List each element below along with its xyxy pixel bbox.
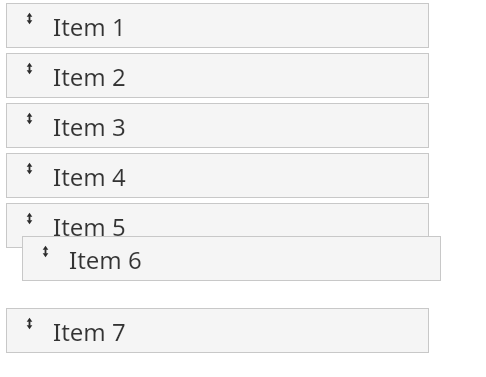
other: Reorder Item 3 [25, 112, 34, 125]
other: Reorder Item 2 [25, 62, 34, 75]
button[interactable]: Reorder Item 4 [6, 153, 429, 198]
other: Reorder Item 4 [25, 162, 34, 175]
button[interactable]: Reorder Item 5 [6, 203, 429, 248]
other: Reorder Item 7 [25, 317, 34, 330]
other: Reorder Item 5 [25, 212, 34, 225]
other: Reorder Item 1 [25, 12, 34, 25]
staticText: Item 3 [53, 110, 126, 143]
button[interactable]: Reorder Item 7 [6, 308, 429, 353]
staticText: Item 7 [53, 315, 126, 348]
staticText: Item 4 [53, 160, 126, 193]
other: Reorder Item 6 [41, 245, 50, 258]
staticText: Item 1 [53, 10, 126, 43]
button[interactable]: Reorder Item 1 [6, 3, 429, 48]
staticText: Item 6 [69, 243, 142, 276]
button[interactable]: Dragging Item 6 [22, 236, 441, 281]
button[interactable]: Reorder Item 3 [6, 103, 429, 148]
staticText: Item 2 [53, 60, 126, 93]
staticText: Item 5 [53, 210, 126, 243]
button[interactable]: Reorder Item 2 [6, 53, 429, 98]
